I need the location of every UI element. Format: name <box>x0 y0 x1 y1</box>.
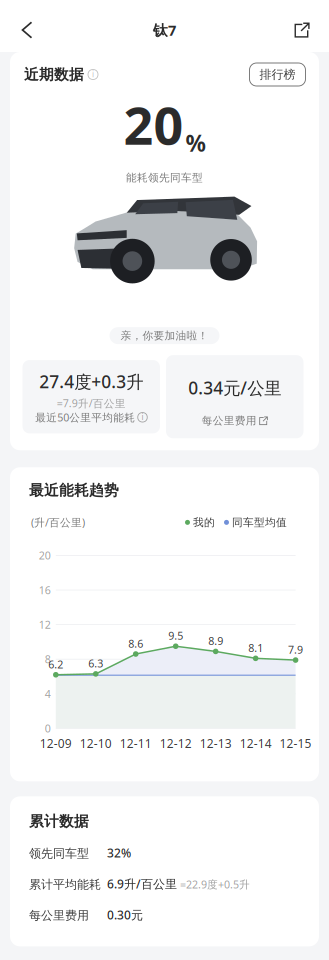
button[interactable]: 分享 <box>280 8 324 52</box>
staticText: 0 <box>45 721 51 735</box>
staticText: 最近50公里平均能耗 <box>35 410 135 424</box>
staticText: 6.9升/百公里 <box>107 876 177 892</box>
staticText: 领先同车型 <box>29 846 89 861</box>
staticText: 累计数据 <box>29 812 89 830</box>
staticText: 每公里费用 <box>202 414 257 427</box>
staticText: 7.9 <box>288 642 303 657</box>
staticText: 8.1 <box>248 641 263 655</box>
staticText: 我的 <box>193 516 215 529</box>
staticText: 排行榜 <box>259 67 295 82</box>
staticText: 16 <box>39 583 51 597</box>
staticText: 8.9 <box>208 634 223 648</box>
button[interactable]: 返回 <box>5 8 49 52</box>
staticText: 最近能耗趋势 <box>29 481 119 499</box>
staticText: =22.9度+0.5升 <box>177 877 250 891</box>
staticText: 0.30元 <box>107 907 143 923</box>
staticText: 27.4度+0.3升 <box>39 370 143 393</box>
staticText: 12 <box>39 617 51 632</box>
staticText: 12-13 <box>200 735 232 751</box>
staticText: 12-09 <box>40 735 72 751</box>
staticText: % <box>185 128 205 158</box>
staticText: 0.34元/公里 <box>188 376 281 399</box>
staticText: 6.3 <box>88 656 103 670</box>
staticText: 9.5 <box>168 629 183 643</box>
staticText: 4 <box>45 687 51 701</box>
staticText: 12-11 <box>120 735 152 751</box>
staticText: i <box>141 412 143 422</box>
button[interactable]: 排行榜 <box>249 63 305 86</box>
staticText: 8.6 <box>128 636 143 651</box>
staticText: 12-15 <box>280 735 312 751</box>
staticText: 累计平均能耗 <box>29 877 101 892</box>
staticText: 12-10 <box>80 735 112 751</box>
staticText: =7.9升/百公里 <box>57 396 126 410</box>
staticText: 钛7 <box>153 20 176 40</box>
staticText: 每公里费用 <box>29 908 89 923</box>
staticText: 亲，你要加油啦！ <box>120 329 208 342</box>
staticText: (升/百公里) <box>31 515 85 529</box>
staticText: 12-14 <box>240 735 272 751</box>
staticText: 12-12 <box>160 735 192 751</box>
staticText: 6.2 <box>48 657 63 671</box>
staticText: 同车型均值 <box>232 516 287 529</box>
staticText: 8 <box>45 652 51 666</box>
staticText: 20 <box>39 548 51 563</box>
staticText: 32% <box>107 845 131 861</box>
staticText: i <box>92 69 94 79</box>
staticText: 近期数据 <box>24 65 84 83</box>
staticText: 20 <box>123 90 183 159</box>
staticText: 能耗领先同车型 <box>126 171 203 184</box>
